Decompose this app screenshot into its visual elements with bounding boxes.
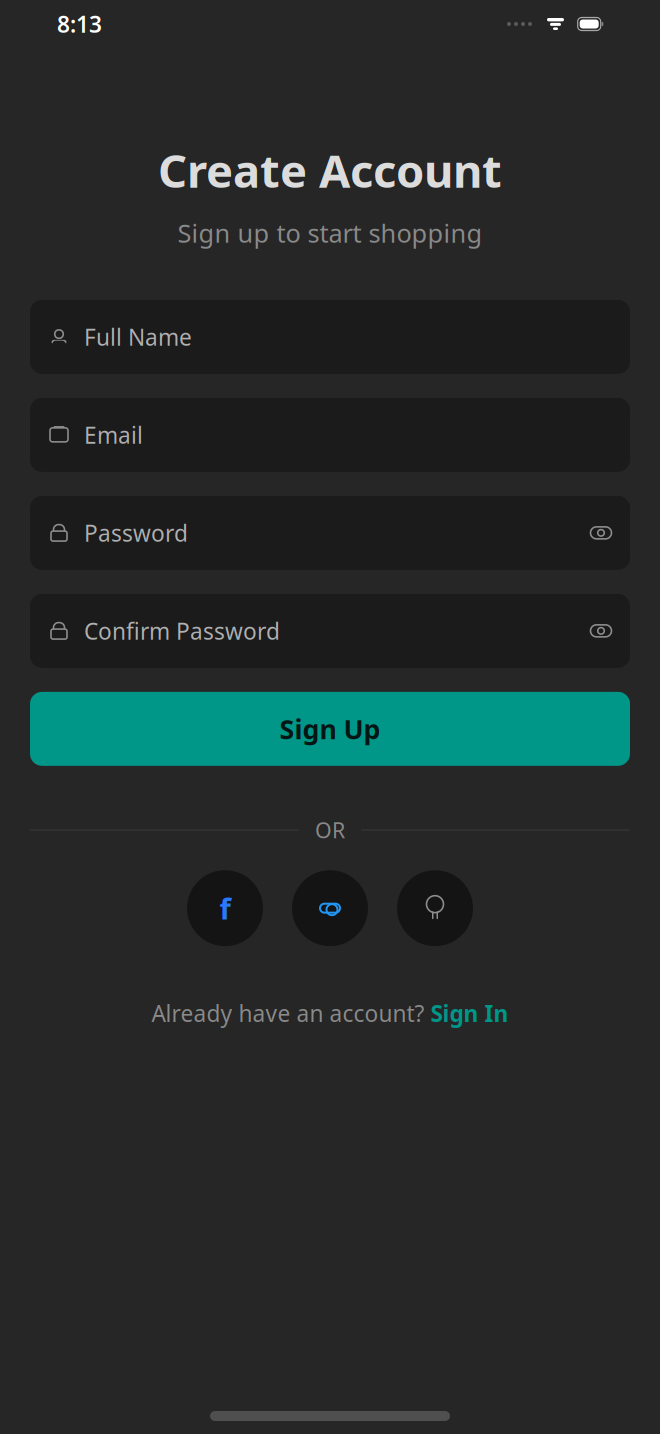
staticText: 8:13 <box>57 9 102 39</box>
button[interactable]: Sign up with Twitter <box>292 870 368 946</box>
staticText: Email <box>84 420 143 450</box>
staticText: Password <box>84 518 188 548</box>
button[interactable]: Sign up with GitHub <box>397 870 473 946</box>
button[interactable]: Sign up with Facebook <box>187 870 263 946</box>
button[interactable]: Full Name <box>30 300 630 374</box>
staticText: Sign up to start shopping <box>177 216 482 250</box>
staticText: f <box>219 889 230 928</box>
staticText: Sign Up <box>279 711 380 746</box>
button[interactable]: Password <box>30 496 630 570</box>
staticText: Create Account <box>158 140 502 200</box>
button[interactable]: Email <box>30 398 630 472</box>
button[interactable]: Already have an account? <box>143 992 516 1034</box>
button[interactable]: Confirm Password <box>30 594 630 668</box>
staticText: Full Name <box>84 322 192 352</box>
staticText: Sign In <box>430 998 508 1028</box>
staticText: Already have an account? <box>151 998 424 1028</box>
staticText: Confirm Password <box>84 616 280 646</box>
staticText: OR <box>315 816 345 844</box>
button[interactable]: Sign Up <box>30 692 630 766</box>
